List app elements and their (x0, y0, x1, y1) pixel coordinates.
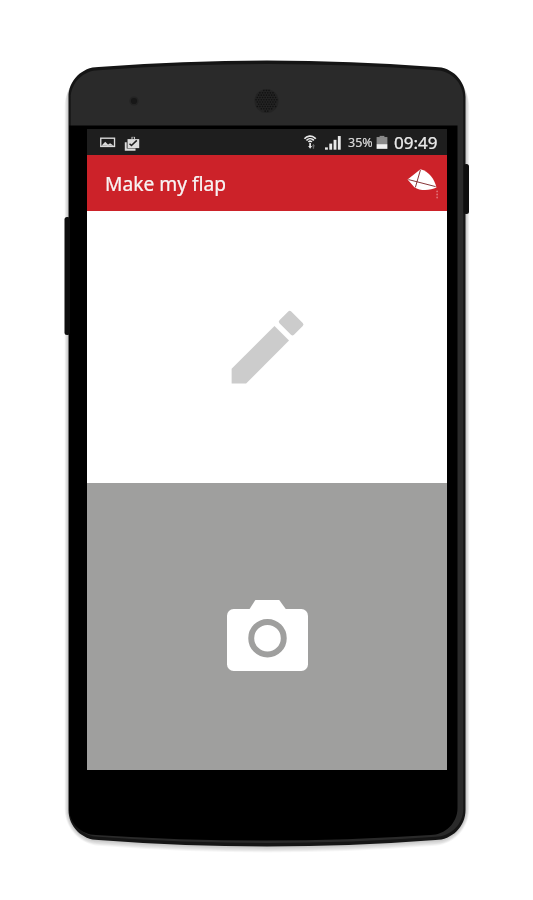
button[interactable]: Flap menu (400, 155, 444, 211)
button[interactable]: Draw (87, 211, 447, 483)
staticText: Make my flap (105, 170, 227, 196)
staticText: 09:49 (394, 131, 438, 154)
staticText: 35% (348, 134, 373, 151)
button[interactable]: Take photo (87, 483, 447, 770)
